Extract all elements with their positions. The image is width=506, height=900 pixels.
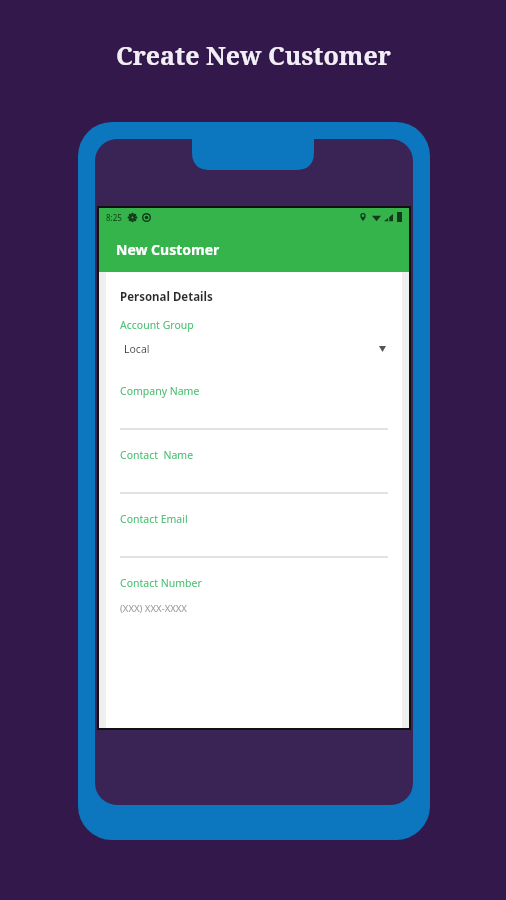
staticText: Contact Number xyxy=(120,576,202,590)
staticText: Local xyxy=(124,342,150,356)
staticText: 8:25 xyxy=(106,212,122,223)
staticText: New Customer xyxy=(116,240,220,259)
button[interactable]: Contact Name xyxy=(120,430,388,494)
staticText: Company Name xyxy=(120,384,200,398)
staticText: Contact Email xyxy=(120,512,188,526)
staticText: Create New Customer xyxy=(116,38,391,72)
button[interactable]: Company Name xyxy=(120,366,388,430)
button[interactable]: New Customer xyxy=(99,226,409,272)
button[interactable]: Local xyxy=(120,332,388,366)
staticText: Contact Name xyxy=(120,448,194,462)
staticText: Personal Details xyxy=(120,289,213,305)
button[interactable]: Contact Email xyxy=(120,494,388,558)
staticText: Account Group xyxy=(120,318,194,332)
staticText: (XXX) XXX-XXXX xyxy=(120,602,187,615)
